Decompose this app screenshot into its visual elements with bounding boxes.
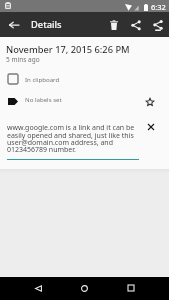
button[interactable]: In clipboard (0, 71, 169, 86)
button[interactable]: Recent apps (120, 277, 142, 299)
button[interactable]: Share with app (147, 14, 169, 36)
staticText: www.google.com is a link and it can be e… (7, 123, 141, 154)
staticText: In clipboard (25, 75, 60, 83)
staticText: November 17, 2015 6:26 PM (6, 43, 130, 56)
button[interactable]: Home (73, 277, 95, 299)
button[interactable]: Back (27, 277, 49, 299)
staticText: 6:32 (151, 2, 166, 12)
button[interactable]: Delete (103, 14, 125, 36)
button[interactable]: Clear (144, 120, 158, 134)
button[interactable]: Star (142, 94, 158, 110)
staticText: Details (31, 18, 62, 31)
button[interactable]: Navigate up (0, 12, 27, 37)
staticText: No labels set (25, 95, 142, 103)
staticText: 5 mins ago (6, 55, 40, 64)
button[interactable]: Share (125, 14, 147, 36)
